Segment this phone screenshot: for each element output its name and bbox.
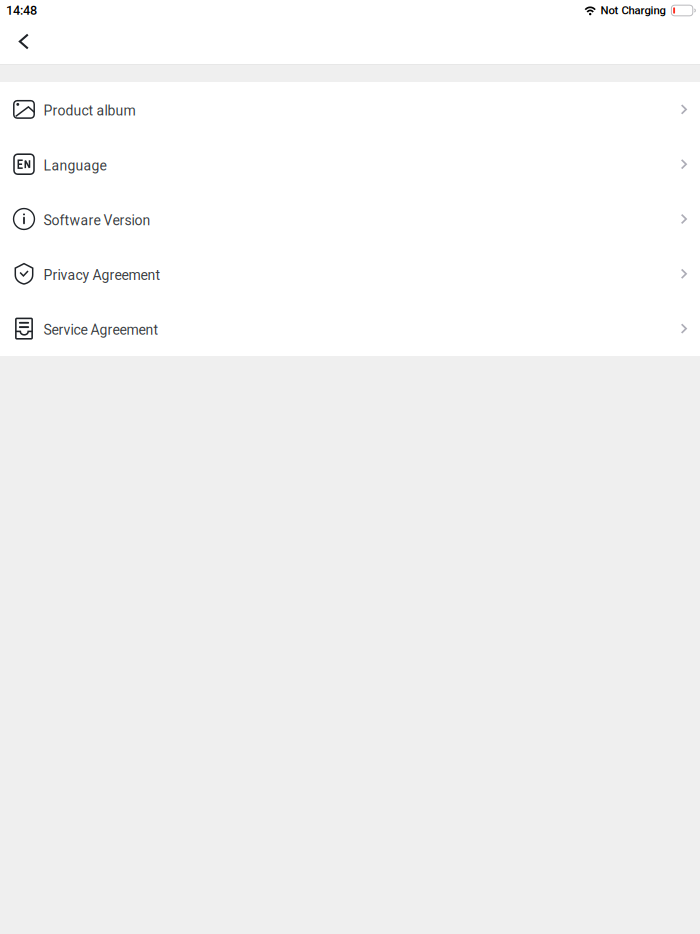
staticText: Service Agreement (43, 322, 158, 338)
staticText: Not Charging (600, 4, 665, 17)
staticText: 14:48 (6, 3, 37, 18)
button[interactable]: Language (0, 137, 700, 192)
staticText: Product album (43, 103, 135, 119)
button[interactable]: Software Version (0, 192, 700, 246)
staticText: Software Version (43, 212, 150, 229)
staticText: Privacy Agreement (43, 267, 160, 283)
button[interactable]: Service Agreement (0, 301, 700, 356)
staticText: Language (43, 157, 106, 174)
button[interactable]: Product album (0, 82, 700, 137)
button[interactable]: Back (0, 21, 45, 64)
button[interactable]: Privacy Agreement (0, 246, 700, 301)
